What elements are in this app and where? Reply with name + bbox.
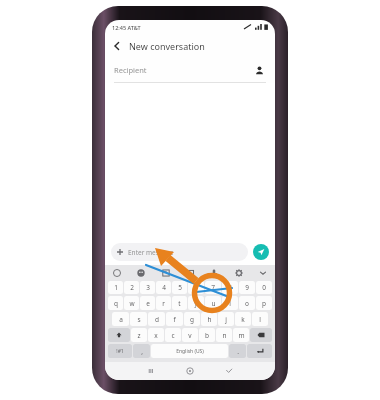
button[interactable]: y: [188, 296, 204, 310]
button[interactable]: 9: [239, 281, 255, 294]
staticText: 7: [211, 283, 215, 292]
button[interactable]: Back: [209, 362, 248, 380]
button[interactable]: c: [165, 328, 181, 342]
staticText: x: [154, 331, 158, 340]
staticText: n: [222, 331, 227, 340]
button[interactable]: m: [233, 328, 249, 342]
staticText: 2: [130, 283, 134, 292]
button[interactable]: j: [218, 312, 234, 326]
staticText: !#1: [116, 348, 124, 355]
button[interactable]: Back: [105, 34, 275, 58]
staticText: Enter message: [128, 248, 174, 257]
staticText: a: [119, 315, 123, 324]
staticText: 12:45 AT&T: [112, 24, 141, 31]
button[interactable]: a: [112, 312, 129, 326]
button[interactable]: Recipient: [114, 58, 266, 82]
button[interactable]: Home: [170, 362, 209, 380]
button[interactable]: t: [172, 296, 187, 310]
button[interactable]: z: [131, 328, 147, 342]
button[interactable]: Shift: [108, 328, 130, 342]
staticText: j: [225, 315, 227, 324]
button[interactable]: h: [201, 312, 217, 326]
button[interactable]: k: [235, 312, 251, 326]
button[interactable]: i: [222, 296, 238, 310]
staticText: g: [190, 315, 194, 324]
button[interactable]: g: [184, 312, 200, 326]
button[interactable]: Backspace: [250, 328, 272, 342]
staticText: 5: [178, 283, 182, 292]
button[interactable]: w: [124, 296, 139, 310]
staticText: v: [188, 331, 192, 340]
staticText: u: [211, 299, 216, 308]
button[interactable]: v: [182, 328, 198, 342]
button[interactable]: Back: [105, 34, 129, 58]
button[interactable]: !#1: [108, 344, 132, 358]
button[interactable]: Settings: [110, 266, 124, 280]
button[interactable]: Contacts: [252, 63, 266, 77]
button[interactable]: e: [140, 296, 155, 310]
button[interactable]: 4: [156, 281, 171, 294]
button[interactable]: GIF: [183, 266, 197, 280]
button[interactable]: Collapse: [256, 266, 270, 280]
button[interactable]: English (US): [151, 344, 228, 358]
staticText: .: [237, 347, 239, 356]
button[interactable]: p: [256, 296, 272, 310]
staticText: 9: [245, 283, 249, 292]
staticText: ,: [141, 347, 143, 356]
staticText: o: [245, 299, 249, 308]
button[interactable]: Recents: [131, 362, 170, 380]
button[interactable]: Keyboard settings: [232, 266, 246, 280]
button[interactable]: 1: [108, 281, 123, 294]
button[interactable]: Enter: [247, 344, 272, 358]
button[interactable]: x: [148, 328, 164, 342]
staticText: p: [262, 299, 266, 308]
button[interactable]: o: [239, 296, 255, 310]
staticText: k: [241, 315, 245, 324]
button[interactable]: .: [229, 344, 246, 358]
staticText: English (US): [176, 348, 204, 355]
staticText: New conversation: [129, 40, 205, 52]
button[interactable]: Voice: [207, 266, 221, 280]
staticText: 0: [262, 283, 266, 292]
staticText: s: [137, 315, 141, 324]
button[interactable]: 6: [188, 281, 204, 294]
staticText: m: [238, 331, 245, 340]
button[interactable]: q: [108, 296, 123, 310]
staticText: 6: [194, 283, 198, 292]
staticText: w: [129, 299, 135, 308]
button[interactable]: s: [130, 312, 147, 326]
staticText: 1: [114, 283, 118, 292]
button[interactable]: n: [216, 328, 232, 342]
staticText: Recipient: [114, 65, 147, 75]
button[interactable]: 0: [256, 281, 272, 294]
staticText: 8: [228, 283, 232, 292]
staticText: 4: [162, 283, 166, 292]
staticText: b: [205, 331, 209, 340]
button[interactable]: 2: [124, 281, 139, 294]
staticText: f: [173, 315, 176, 324]
button[interactable]: Send: [253, 244, 269, 260]
button[interactable]: u: [205, 296, 221, 310]
button[interactable]: 8: [222, 281, 238, 294]
staticText: e: [146, 299, 150, 308]
button[interactable]: l: [252, 312, 268, 326]
staticText: 3: [146, 283, 150, 292]
button[interactable]: Emoji: [134, 266, 148, 280]
staticText: c: [171, 331, 175, 340]
button[interactable]: ,: [133, 344, 150, 358]
staticText: t: [178, 299, 181, 308]
button[interactable]: 5: [172, 281, 187, 294]
button[interactable]: 3: [140, 281, 155, 294]
button[interactable]: Stickers: [159, 266, 173, 280]
staticText: r: [162, 299, 165, 308]
staticText: q: [114, 299, 118, 308]
button[interactable]: Enter message: [111, 243, 248, 261]
button[interactable]: b: [199, 328, 215, 342]
button[interactable]: 7: [205, 281, 221, 294]
staticText: l: [259, 315, 261, 324]
staticText: d: [155, 315, 159, 324]
button[interactable]: f: [166, 312, 183, 326]
button[interactable]: r: [156, 296, 171, 310]
button[interactable]: d: [148, 312, 165, 326]
staticText: z: [137, 331, 141, 340]
